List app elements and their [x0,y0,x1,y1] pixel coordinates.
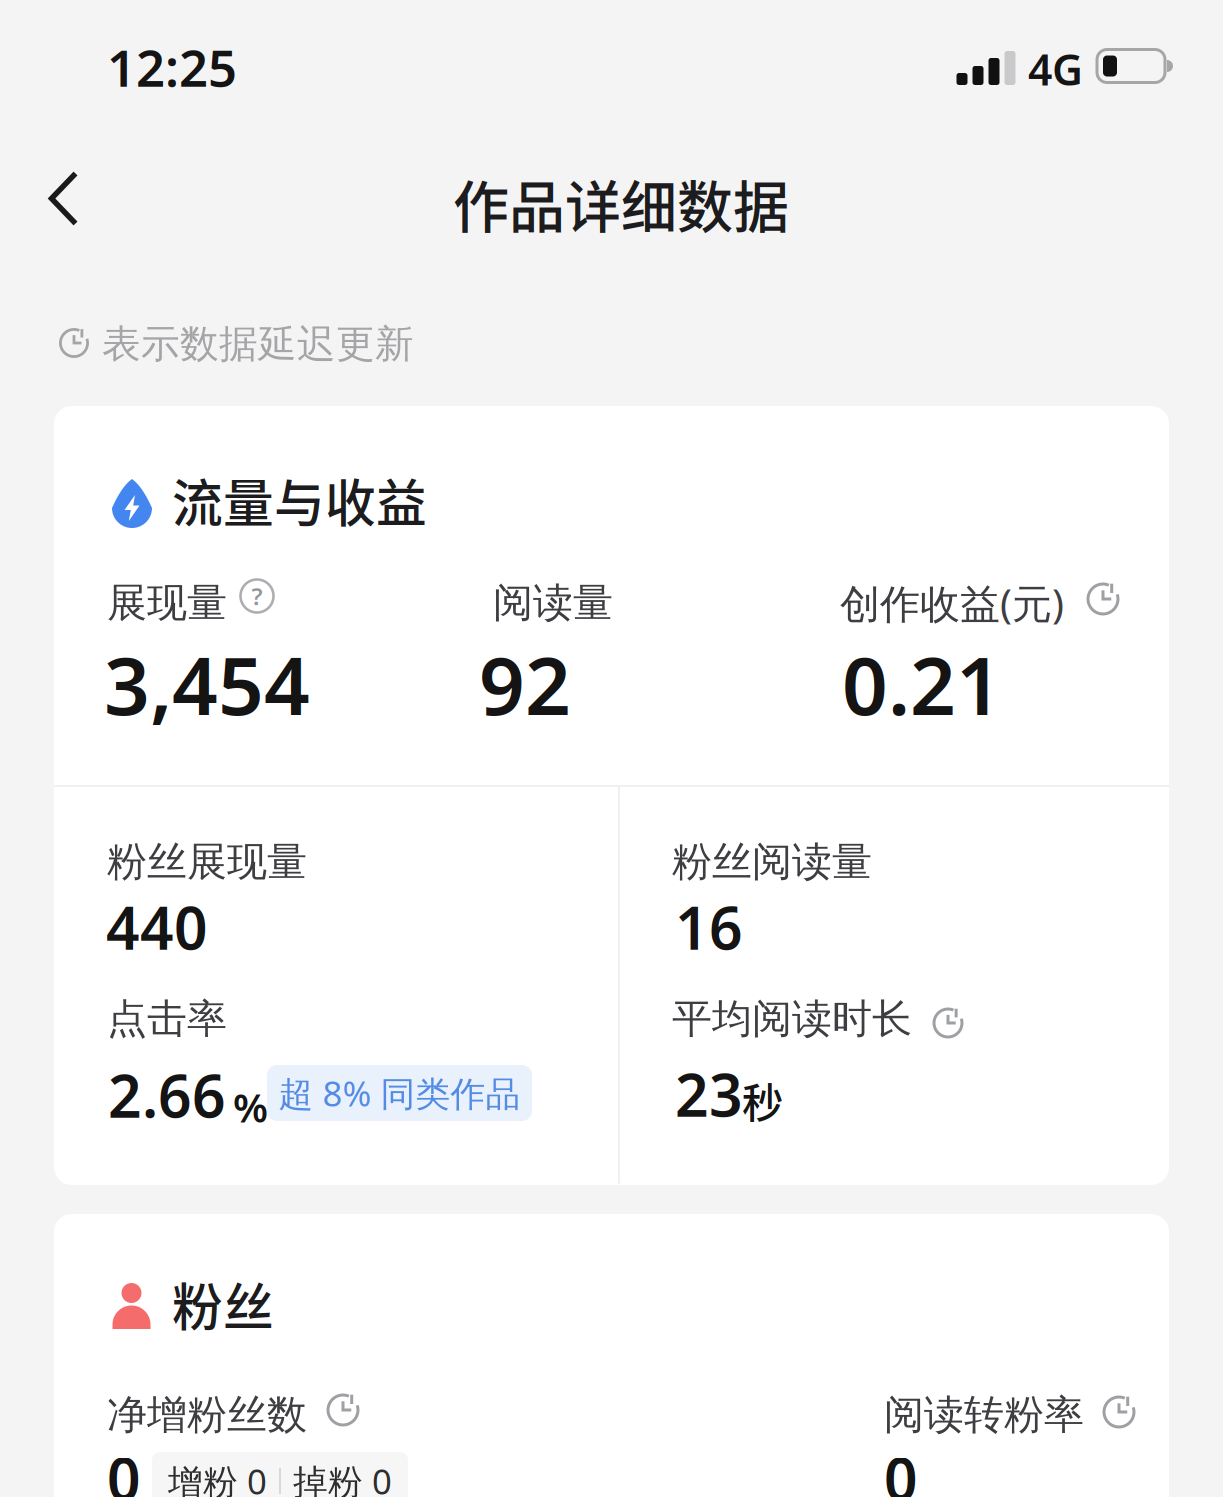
staticText: 阅读量 [493,578,613,627]
staticText: 0 [107,1439,141,1497]
button[interactable]: 展现量说明 [240,579,273,612]
staticText: 阅读转粉率 [884,1390,1084,1439]
staticText: 增粉 0 [168,1458,267,1497]
button[interactable]: 返回 [23,153,103,243]
staticText: 粉丝 [172,1267,274,1341]
staticText: 掉粉 0 [293,1458,392,1497]
staticText: 440 [106,888,208,966]
staticText: 展现量 [107,578,227,627]
staticText: 粉丝阅读量 [672,837,872,886]
staticText: % [233,1080,268,1133]
staticText: 表示数据延迟更新 [102,320,414,368]
staticText: 秒 [742,1070,783,1130]
staticText: 3,454 [104,631,310,737]
staticText: 23 [675,1055,743,1133]
staticText: 点击率 [107,994,227,1043]
staticText: 创作收益(元) [840,576,1064,629]
staticText: 92 [479,631,571,737]
staticText: 超 8% 同类作品 [278,1070,520,1116]
staticText: 12:25 [107,33,237,101]
staticText: 流量与收益 [172,463,427,537]
staticText: 净增粉丝数 [107,1390,307,1439]
staticText: 作品详细数据 [453,162,789,244]
staticText: 平均阅读时长 [672,994,912,1043]
staticText: 16 [675,888,743,966]
staticText: 粉丝展现量 [107,837,307,886]
staticText: 4G [1028,41,1083,97]
staticText: 0 [884,1439,918,1497]
staticText: 2.66 [108,1056,226,1134]
staticText: ? [251,580,262,612]
staticText: 0.21 [842,631,1002,737]
